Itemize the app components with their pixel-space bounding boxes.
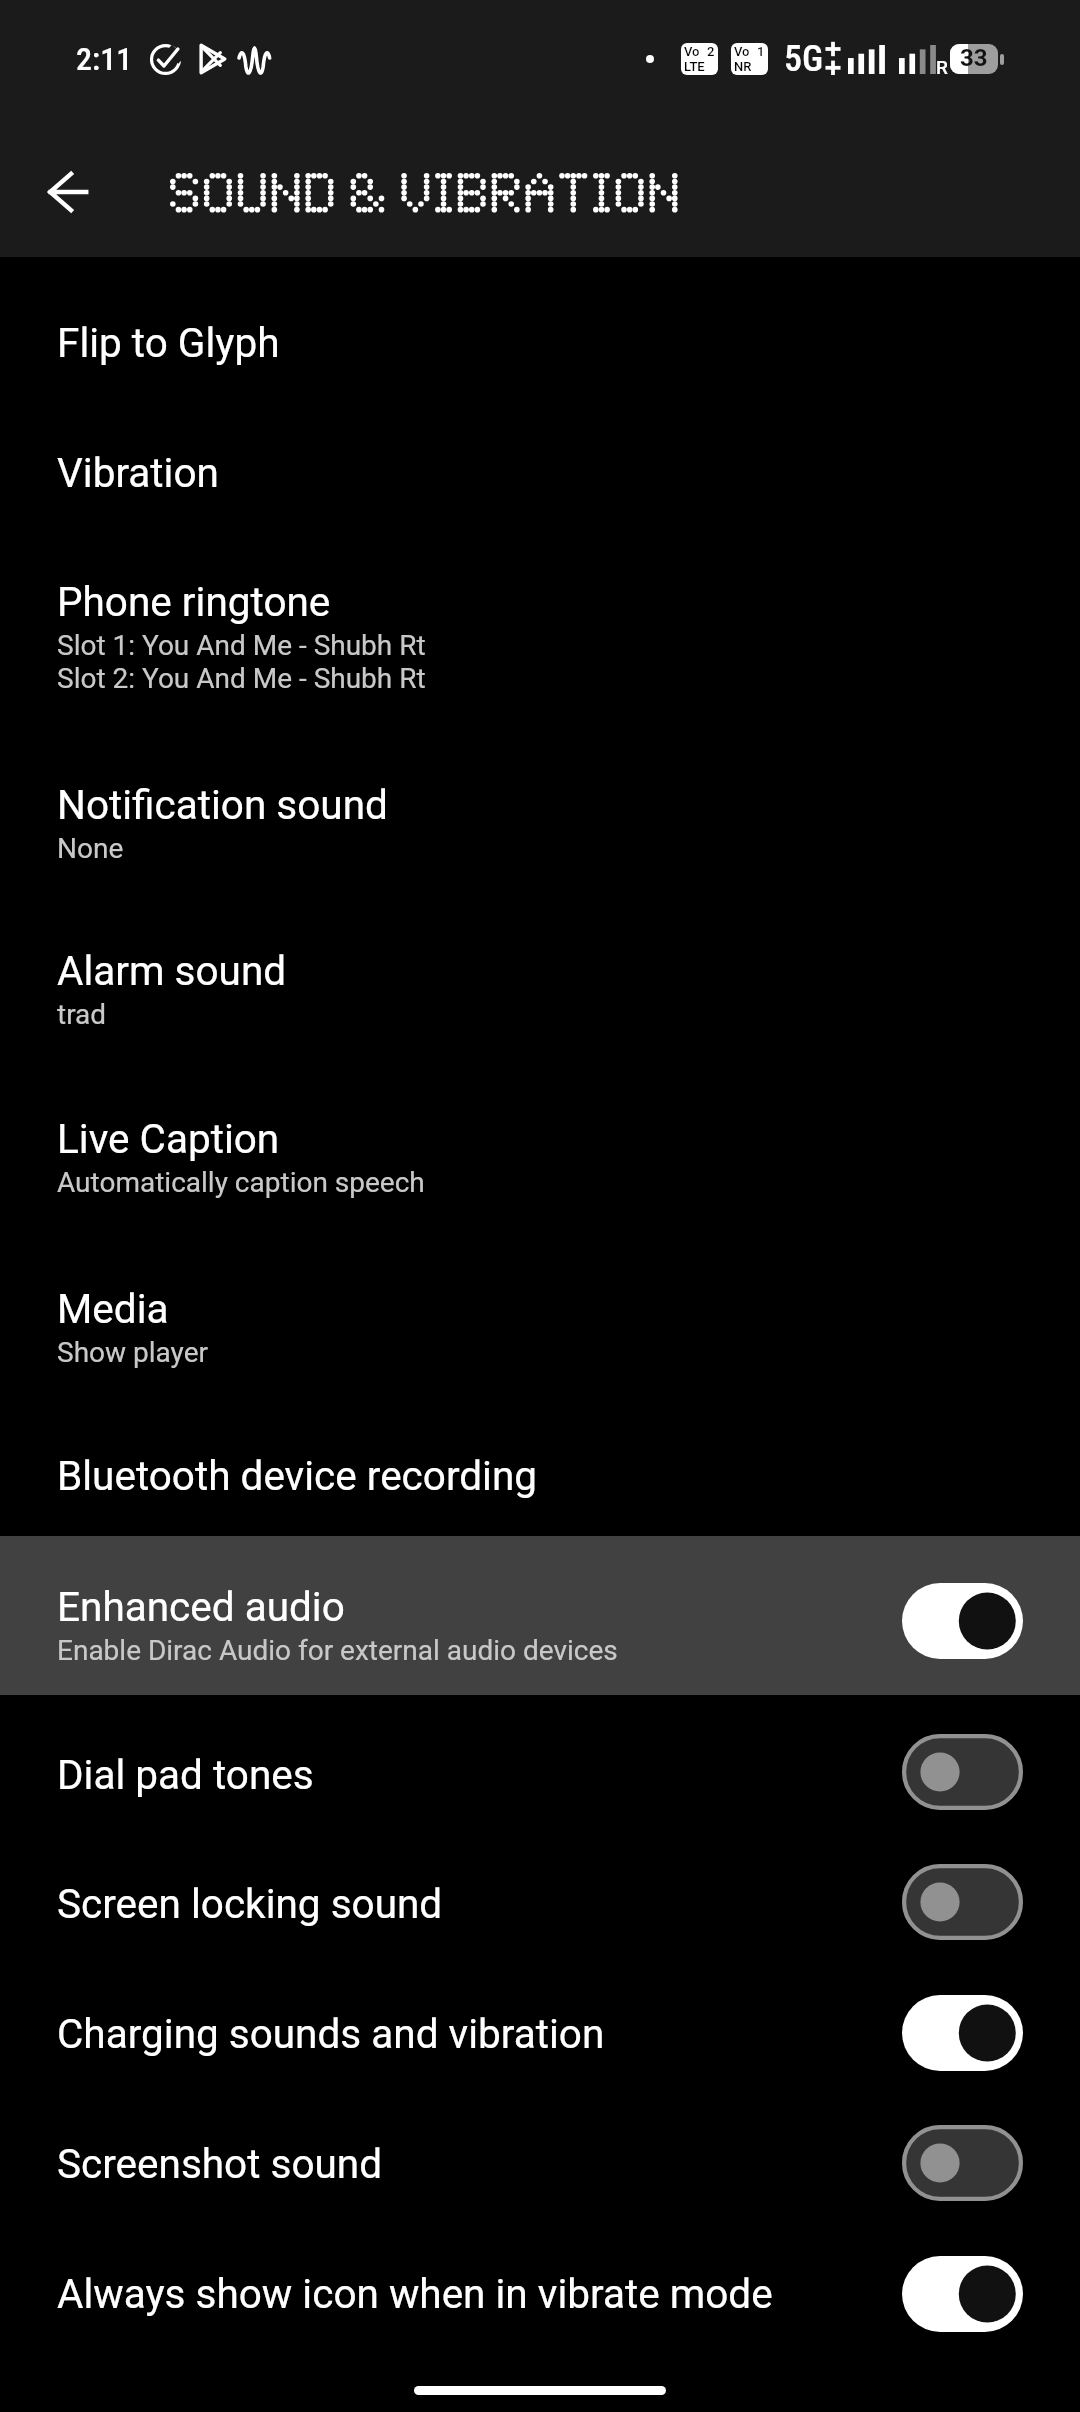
button[interactable]: Live Caption — [0, 1055, 1080, 1215]
staticText: Show player — [57, 1336, 208, 1369]
staticText: Charging sounds and vibration — [57, 2010, 605, 2057]
button[interactable]: Dial pad tones — [0, 1695, 1080, 1830]
staticText: 2 — [707, 44, 715, 59]
button[interactable]: Back — [32, 156, 104, 228]
button[interactable]: Flip to Glyph — [0, 257, 1080, 385]
button[interactable]: Bluetooth device recording — [0, 1373, 1080, 1536]
staticText: 1 — [757, 44, 765, 59]
staticText: Notification sound — [57, 781, 388, 828]
staticText: NR — [734, 59, 752, 74]
staticText: Vibration — [57, 449, 219, 496]
staticText: None — [57, 832, 124, 865]
button[interactable]: Screenshot sound — [0, 2090, 1080, 2220]
staticText: Slot 1: You And Me - Shubh Rt — [57, 629, 426, 662]
staticText: 2:11 — [76, 40, 133, 78]
staticText: Vo — [734, 44, 750, 59]
staticText: Live Caption — [57, 1115, 280, 1162]
staticText: Media — [57, 1285, 169, 1332]
button[interactable]: Media — [0, 1215, 1080, 1373]
button[interactable]: Phone ringtone — [0, 515, 1080, 717]
staticText: 5G — [784, 38, 824, 80]
staticText: Slot 2: You And Me - Shubh Rt — [57, 662, 426, 695]
staticText: R — [936, 56, 948, 78]
button[interactable]: Charging sounds and vibration — [0, 1960, 1080, 2090]
staticText: Phone ringtone — [57, 578, 331, 625]
staticText: Always show icon when in vibrate mode — [57, 2270, 773, 2317]
staticText: Screen locking sound — [57, 1880, 443, 1927]
staticText: Dial pad tones — [57, 1751, 314, 1798]
staticText: Screenshot sound — [57, 2140, 383, 2187]
staticText: Enhanced audio — [57, 1583, 345, 1630]
button[interactable]: Notification sound — [0, 717, 1080, 873]
staticText: 33 — [960, 44, 988, 72]
staticText: LTE — [684, 59, 705, 74]
staticText: Alarm sound — [57, 947, 287, 994]
button[interactable]: Alarm sound — [0, 873, 1080, 1055]
staticText: Bluetooth device recording — [57, 1452, 538, 1499]
staticText: Automatically caption speech — [57, 1166, 425, 1199]
button[interactable]: Vibration — [0, 385, 1080, 515]
staticText: Flip to Glyph — [57, 319, 280, 366]
staticText: Enable Dirac Audio for external audio de… — [57, 1634, 618, 1667]
button[interactable]: Enhanced audio — [0, 1536, 1080, 1695]
staticText: trad — [57, 998, 107, 1031]
button[interactable]: Always show icon when in vibrate mode — [0, 2220, 1080, 2350]
staticText: Vo — [684, 44, 700, 59]
button[interactable]: Screen locking sound — [0, 1830, 1080, 1960]
